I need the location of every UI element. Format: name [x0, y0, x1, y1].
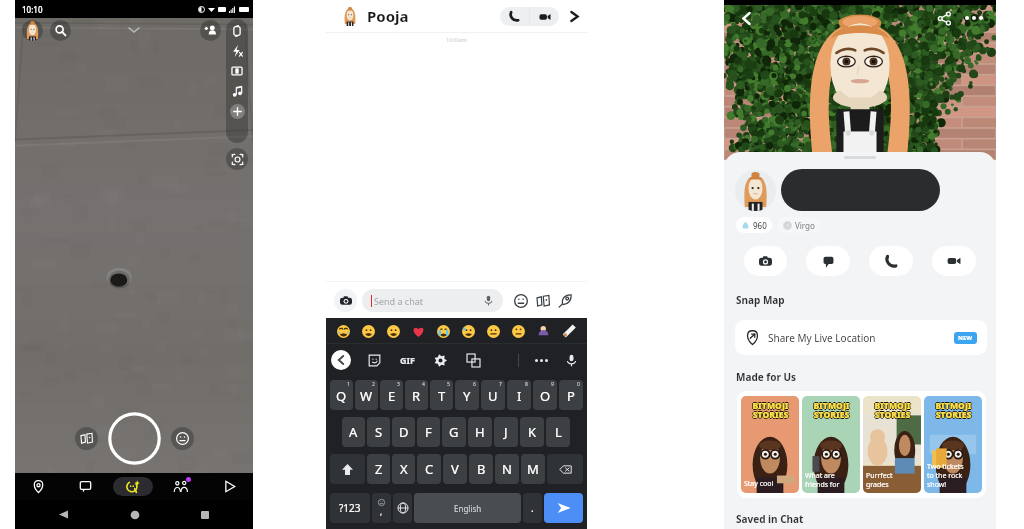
button[interactable]: L	[546, 417, 570, 447]
button[interactable]: Call	[869, 246, 913, 276]
button[interactable]: Rocket	[556, 292, 573, 309]
staticText: R	[412, 387, 421, 405]
button[interactable]: Z	[367, 454, 390, 484]
button[interactable]: Friends	[170, 476, 192, 498]
staticText: Saved in Chat	[736, 512, 804, 526]
button[interactable]: E	[380, 380, 403, 410]
button[interactable]: P	[559, 380, 583, 410]
button[interactable]: Emoji	[335, 323, 351, 339]
button[interactable]: R	[405, 380, 428, 410]
button[interactable]: Search	[50, 20, 71, 41]
button[interactable]: S	[367, 417, 390, 447]
button[interactable]: More Options	[533, 352, 550, 369]
button[interactable]: Back	[736, 8, 756, 28]
button[interactable]: BITMOJI STORIES	[863, 396, 921, 493]
button[interactable]: Spotlight	[205, 473, 253, 500]
button[interactable]: Language	[393, 493, 412, 523]
button[interactable]: F	[417, 417, 440, 447]
button[interactable]: Profile	[340, 6, 360, 26]
staticText: Pooja	[367, 6, 409, 26]
staticText: I	[517, 387, 522, 405]
button[interactable]: Music	[230, 84, 244, 98]
button[interactable]: X	[392, 454, 415, 484]
button[interactable]: H	[468, 417, 492, 447]
button[interactable]: Shift	[330, 454, 365, 484]
button[interactable]: Stickers	[534, 292, 551, 309]
button[interactable]: Camera	[334, 289, 357, 312]
button[interactable]: .	[523, 493, 542, 523]
button[interactable]: Virgo	[778, 217, 820, 233]
button[interactable]: Call	[500, 7, 529, 26]
button[interactable]: Share	[934, 8, 954, 28]
staticText: NEW	[958, 334, 973, 342]
button[interactable]: Emoji	[435, 323, 451, 339]
button[interactable]: ,	[372, 493, 391, 523]
button[interactable]: Emoji	[360, 323, 376, 339]
button[interactable]: Settings	[432, 352, 449, 369]
button[interactable]: Q	[330, 380, 353, 410]
button[interactable]: Send	[544, 493, 583, 523]
button[interactable]: Add Friends	[200, 20, 221, 41]
staticText: L	[555, 423, 562, 441]
button[interactable]: Emoji	[512, 292, 529, 309]
button[interactable]: Video Call	[530, 7, 559, 26]
button[interactable]: Scan	[226, 148, 248, 170]
button[interactable]: K	[520, 417, 544, 447]
button[interactable]: Memories	[75, 427, 98, 450]
button[interactable]: Backspace	[547, 454, 583, 484]
button[interactable]: G	[442, 417, 466, 447]
button[interactable]: Lenses	[171, 427, 194, 450]
staticText: W	[360, 387, 373, 405]
button[interactable]: N	[495, 454, 519, 484]
button[interactable]: W	[355, 380, 378, 410]
button[interactable]: Profile	[22, 20, 43, 41]
button[interactable]: BITMOJI STORIES	[741, 396, 799, 493]
button[interactable]: O	[533, 380, 557, 410]
button[interactable]: Chat	[806, 246, 850, 276]
button[interactable]: A	[342, 417, 365, 447]
button[interactable]: V	[443, 454, 467, 484]
button[interactable]: Share My Live Location	[735, 320, 987, 355]
button[interactable]: Back	[331, 350, 351, 370]
button[interactable]: ?123	[330, 493, 370, 523]
button[interactable]: Stickers	[366, 352, 383, 369]
button[interactable]: Flash	[230, 44, 244, 58]
staticText: Made for Us	[736, 370, 797, 384]
button[interactable]: Voice Input	[563, 352, 580, 369]
button[interactable]: Translate	[465, 352, 482, 369]
button[interactable]: Multi Snap	[230, 64, 244, 78]
staticText: BITMOJI STORIES	[936, 400, 973, 421]
button[interactable]: Capture	[108, 412, 161, 465]
button[interactable]: I	[507, 380, 531, 410]
button[interactable]: Emoji	[535, 323, 551, 339]
button[interactable]: T	[430, 380, 453, 410]
button[interactable]: Camera	[113, 477, 153, 496]
button[interactable]: M	[521, 454, 545, 484]
button[interactable]: Camera	[744, 246, 787, 276]
button[interactable]: English	[414, 493, 521, 523]
button[interactable]: More Tools	[230, 104, 245, 119]
button[interactable]: 960	[736, 217, 772, 233]
button[interactable]: D	[392, 417, 415, 447]
button[interactable]: C	[417, 454, 441, 484]
button[interactable]: BITMOJI STORIES	[802, 396, 860, 493]
button[interactable]: Video Call	[932, 246, 976, 276]
button[interactable]: U	[481, 380, 505, 410]
button[interactable]: More Options	[964, 8, 984, 28]
button[interactable]: Emoji	[560, 323, 576, 339]
button[interactable]: Map	[15, 473, 62, 500]
button[interactable]: Emoji	[485, 323, 501, 339]
button[interactable]: Open Profile	[566, 8, 582, 24]
button[interactable]: Emoji	[460, 323, 476, 339]
button[interactable]: Flip Camera	[230, 24, 244, 38]
button[interactable]: J	[494, 417, 518, 447]
button[interactable]: Emoji	[385, 323, 401, 339]
button[interactable]: Emoji	[410, 323, 426, 339]
button[interactable]: BITMOJI STORIES	[924, 396, 982, 493]
button[interactable]: Emoji	[510, 323, 526, 339]
button[interactable]: B	[469, 454, 493, 484]
button[interactable]: Send a chat	[362, 289, 503, 312]
button[interactable]: GIF	[399, 353, 416, 367]
button[interactable]: Chat	[62, 473, 109, 500]
button[interactable]: Y	[455, 380, 479, 410]
